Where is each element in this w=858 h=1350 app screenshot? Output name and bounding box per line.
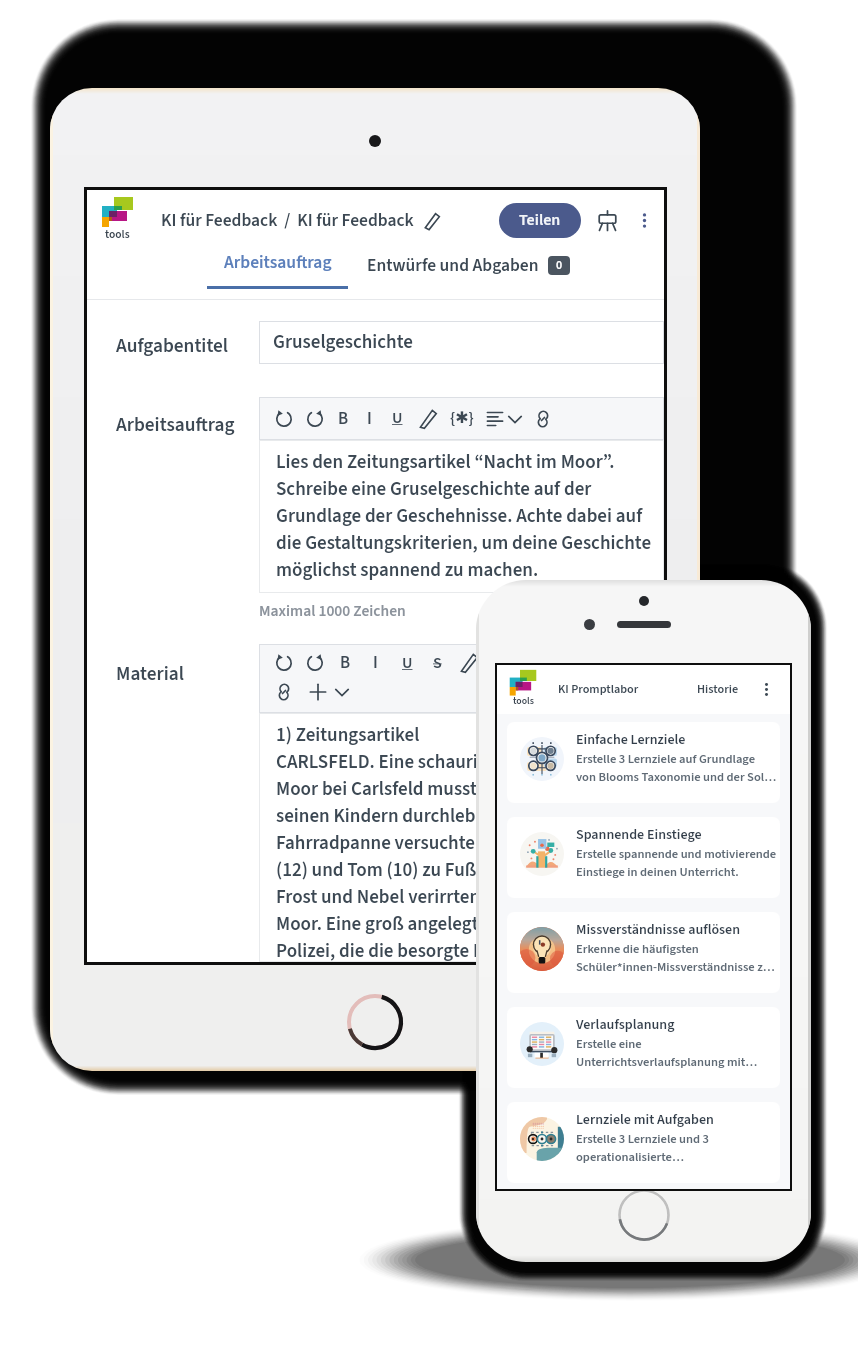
staticText: Grundlage der Geschehnisse. Achte dabei … (276, 503, 643, 530)
staticText: von Blooms Taxonomie und der Sol… (576, 768, 777, 786)
staticText: Verlaufsplanung (576, 1015, 675, 1035)
staticText: Erstelle 3 Lernziele und 3 (576, 1130, 710, 1148)
staticText: Frost und Nebel verirrten sie sich im (276, 884, 568, 911)
staticText: Schreibe eine Gruselgeschichte auf der (276, 476, 592, 503)
staticText: Moor. Eine groß angelegte Suche der (276, 911, 573, 938)
button[interactable]: Verlaufsplanung (507, 1007, 780, 1088)
button[interactable]: Teilen (499, 203, 581, 238)
staticText: Gruselgeschichte (273, 329, 413, 356)
staticText: Material (116, 660, 184, 687)
staticText: Erstelle eine (576, 1035, 642, 1053)
staticText: I (367, 407, 372, 431)
staticText: (12) und Tom (10) zu Fuß zurück. Bei (276, 857, 571, 884)
staticText: Missverständnisse auflösen (576, 920, 741, 940)
staticText: die Gestaltungskriterien, um deine Gesch… (276, 530, 652, 557)
staticText: Spannende Einstiege (576, 825, 702, 845)
staticText: Arbeitsauftrag (116, 411, 235, 438)
staticText: Arbeitsauftrag (224, 250, 332, 275)
staticText: möglichst spannend zu machen. (276, 557, 539, 584)
staticText: Entwürfe und Abgaben (367, 253, 539, 278)
staticText: Lernziele mit Aufgaben (576, 1110, 714, 1130)
staticText: {✱} (450, 407, 474, 430)
staticText: Einstiege in deinen Unterricht. (576, 863, 739, 881)
staticText: Maximal 1000 Zeichen (259, 600, 406, 622)
button[interactable]: Entwürfe und Abgaben (367, 250, 570, 280)
button[interactable]: Weitere Optionen (759, 682, 774, 697)
button[interactable]: Lernziele mit Aufgaben (507, 1102, 780, 1183)
staticText: B (340, 651, 351, 675)
staticText: KI Promptlabor (558, 681, 639, 698)
button[interactable]: Historie (693, 675, 743, 704)
staticText: Erstelle 3 Lernziele auf Grundlage (576, 750, 755, 768)
button[interactable]: Bearbeiten (423, 211, 442, 230)
staticText: seinen Kindern durchleben. Nach einer (276, 803, 593, 830)
staticText: S (433, 652, 442, 675)
staticText: Unterrichtsverlaufsplanung mit… (576, 1053, 758, 1071)
staticText: Polizei, die die besorgte Mutter (276, 938, 528, 962)
staticText: Historie (697, 681, 739, 698)
staticText: Fahrradpanne versuchte er mit Lena (276, 830, 571, 857)
staticText: I (373, 651, 378, 675)
staticText: tools (105, 226, 130, 242)
staticText: Teilen (519, 209, 561, 232)
button[interactable]: Missverständnisse auflösen (507, 912, 780, 993)
staticText: CARLSFELD. Eine schaurige Nacht im (276, 749, 575, 776)
staticText: 1) Zeitungsartikel (276, 722, 420, 749)
button[interactable]: Weitere Optionen (636, 212, 653, 229)
staticText: U (392, 407, 403, 430)
staticText: tools (513, 694, 534, 708)
staticText: U (402, 652, 413, 675)
staticText: Aufgabentitel (116, 332, 229, 359)
staticText: Einfache Lernziele (576, 730, 686, 750)
staticText: Moor bei Carlsfeld musste ein Vater mit (276, 776, 594, 803)
staticText: B (338, 407, 349, 431)
staticText: Erkenne die häufigsten (576, 940, 699, 958)
button[interactable]: Einfache Lernziele (507, 722, 780, 803)
button[interactable]: Spannende Einstiege (507, 817, 780, 898)
staticText: Erstelle spannende und motivierende (576, 845, 777, 863)
staticText: Schüler*innen-Missverständnisse z… (576, 958, 775, 976)
button[interactable]: Arbeitsauftrag (207, 250, 348, 299)
staticText: 0 (556, 257, 563, 274)
button[interactable]: Präsentieren (596, 209, 619, 232)
staticText: Lies den Zeitungsartikel “Nacht im Moor”… (276, 449, 615, 476)
staticText: operationalisierte… (576, 1148, 684, 1166)
staticText: KI für Feedback / KI für Feedback (161, 208, 414, 233)
